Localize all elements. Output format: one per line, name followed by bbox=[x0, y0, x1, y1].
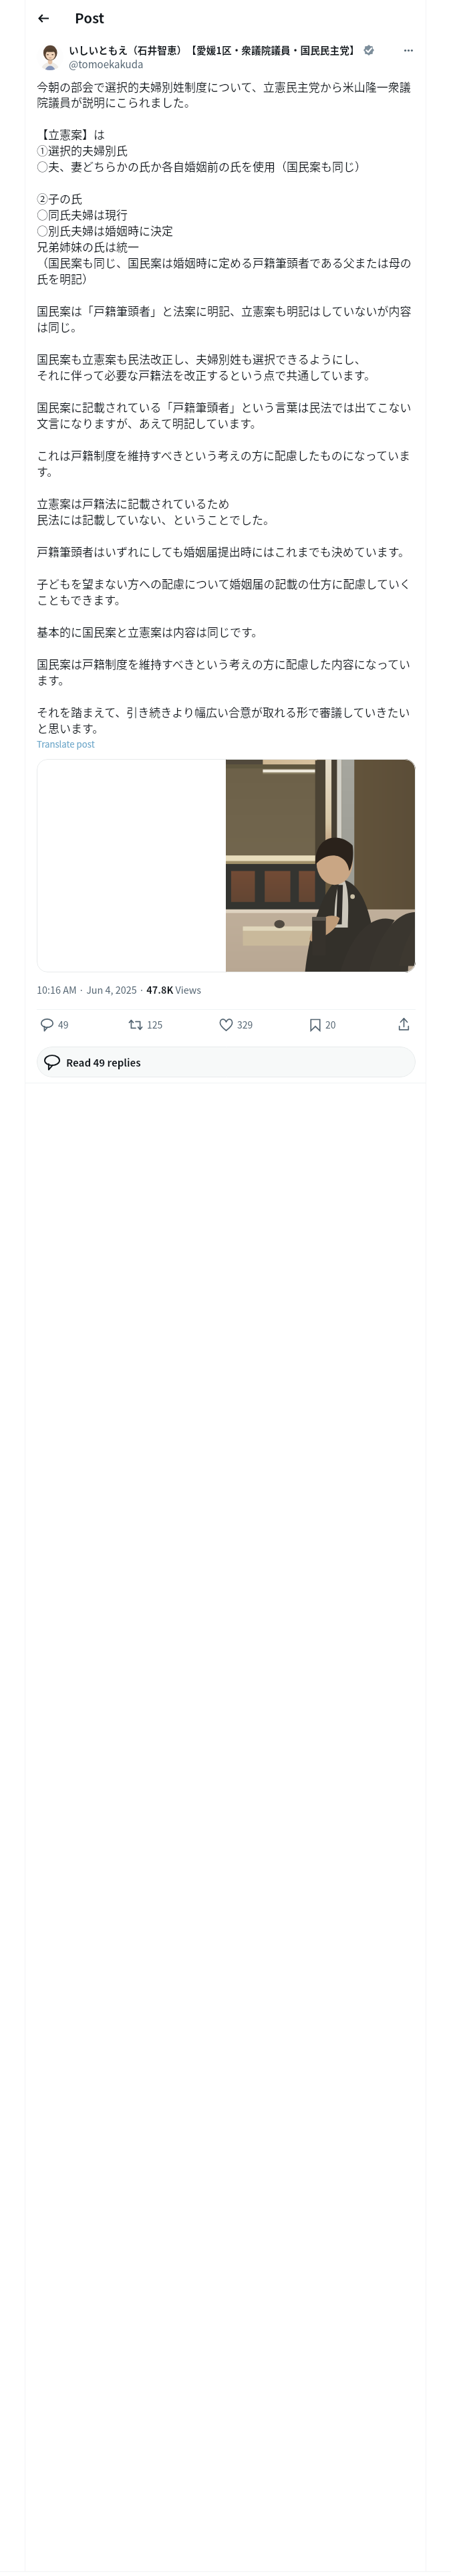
staticText: Post bbox=[75, 7, 105, 27]
button[interactable]: Reply bbox=[38, 1014, 71, 1035]
staticText: 20 bbox=[325, 1018, 336, 1031]
button[interactable]: いしいともえ（石井智恵）【愛媛1区・衆議院議員・国民民主党】 bbox=[69, 43, 359, 57]
staticText: 329 bbox=[237, 1018, 253, 1031]
button[interactable]: 10:16 AM · Jun 4, 2025 · 47.8K Views bbox=[37, 982, 202, 996]
button[interactable]: Share bbox=[396, 1014, 412, 1034]
staticText: 125 bbox=[147, 1018, 163, 1031]
button[interactable]: @tomoekakuda bbox=[69, 57, 144, 72]
button[interactable]: More bbox=[397, 39, 420, 62]
button[interactable]: Bookmark bbox=[307, 1014, 339, 1035]
staticText: 49 bbox=[58, 1018, 69, 1031]
button[interactable]: Repost bbox=[126, 1014, 166, 1035]
staticText: Read 49 replies bbox=[66, 1055, 141, 1070]
staticText: 今朝の部会で選択的夫婦別姓制度について、立憲民主党から米山隆一衆議院議員が説明に… bbox=[37, 78, 416, 736]
button[interactable]: Read 49 replies bbox=[37, 1047, 416, 1077]
staticText: Translate post bbox=[37, 738, 95, 750]
button[interactable]: Back bbox=[32, 7, 55, 29]
button[interactable]: Profile photo bbox=[37, 43, 63, 70]
button[interactable]: Post bbox=[75, 7, 105, 27]
button[interactable]: Like bbox=[217, 1014, 256, 1035]
button[interactable]: Image bbox=[37, 759, 416, 972]
staticText: @tomoekakuda bbox=[69, 57, 144, 72]
staticText: 10:16 AM · Jun 4, 2025 · 47.8K Views bbox=[37, 982, 202, 996]
button[interactable]: Translate post bbox=[37, 738, 95, 750]
